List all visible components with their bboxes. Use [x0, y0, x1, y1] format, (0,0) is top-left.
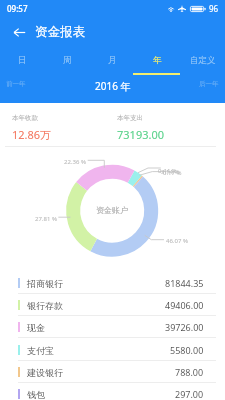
button[interactable]: 银行存款 — [0, 294, 225, 316]
staticText: 22.36 % — [64, 158, 86, 166]
button[interactable]: 自定义 — [180, 47, 225, 73]
button[interactable]: 建设银行 — [0, 361, 225, 383]
staticText: 0.17 % — [163, 169, 182, 177]
staticText: 81844.35 — [165, 277, 204, 289]
staticText: 2016 年 — [95, 79, 131, 93]
staticText: 本年支出 — [117, 114, 143, 122]
button[interactable]: 钱包 — [0, 383, 225, 400]
button[interactable]: 日 — [0, 47, 45, 73]
staticText: 本年收款 — [12, 114, 38, 122]
staticText: 73193.00 — [117, 127, 164, 142]
button[interactable]: Back — [8, 21, 30, 43]
staticText: 27.81 % — [35, 215, 57, 223]
staticText: 招商银行 — [27, 278, 63, 289]
button[interactable]: 后一年 — [195, 77, 223, 91]
button[interactable]: 支付宝 — [0, 339, 225, 361]
staticText: 资金报表 — [35, 24, 85, 40]
staticText: 前一年 — [6, 80, 26, 88]
staticText: 96 — [209, 3, 219, 14]
staticText: 银行存款 — [27, 300, 63, 311]
staticText: 12.86万 — [12, 127, 52, 142]
button[interactable]: 月 — [90, 47, 135, 73]
staticText: 297.00 — [175, 388, 204, 400]
staticText: 3.14 % — [161, 168, 180, 176]
button[interactable]: 前一年 — [2, 77, 30, 91]
staticText: 09:57 — [7, 3, 28, 14]
button[interactable]: 招商银行 — [0, 272, 225, 294]
staticText: 建设银行 — [27, 367, 63, 378]
staticText: 支付宝 — [27, 345, 54, 356]
staticText: 日 — [18, 55, 27, 66]
staticText: 年 — [153, 55, 162, 66]
button[interactable]: 现金 — [0, 316, 225, 338]
staticText: 钱包 — [27, 389, 45, 400]
button[interactable]: 周 — [45, 47, 90, 73]
staticText: 周 — [63, 55, 72, 66]
button[interactable]: 年 — [135, 47, 180, 73]
staticText: 自定义 — [190, 55, 216, 66]
staticText: 现金 — [27, 322, 45, 333]
staticText: 39726.00 — [165, 321, 204, 333]
staticText: 49406.00 — [165, 299, 204, 311]
staticText: 0.44 % — [158, 167, 177, 175]
staticText: 788.00 — [175, 366, 204, 378]
staticText: 5580.00 — [170, 344, 204, 356]
staticText: 后一年 — [199, 80, 219, 88]
staticText: 46.07 % — [166, 237, 188, 245]
staticText: 资金账户 — [96, 205, 128, 215]
staticText: 月 — [108, 55, 117, 66]
